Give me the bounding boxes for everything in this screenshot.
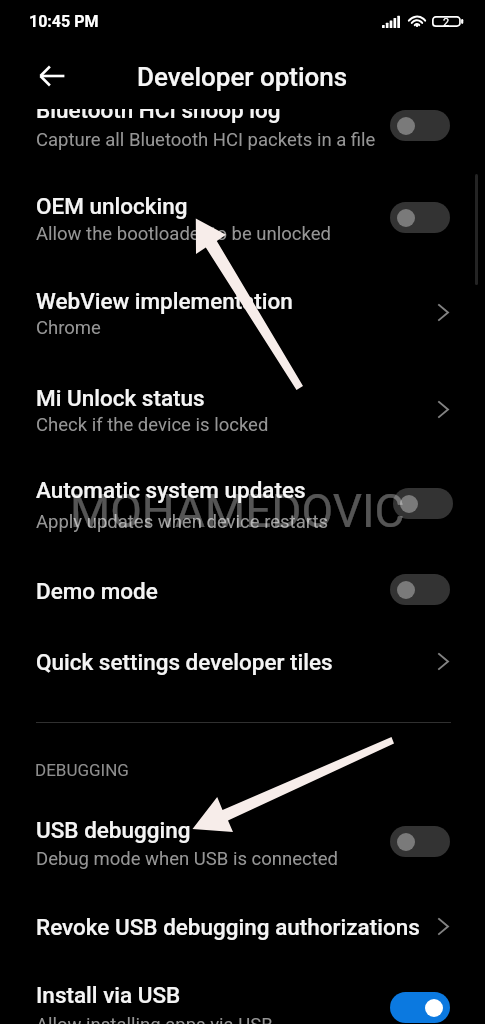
staticText: Chrome (36, 317, 101, 339)
staticText: 10:45 PM (29, 12, 99, 31)
staticText: Quick settings developer tiles (36, 649, 333, 675)
button[interactable]: WebView implementation (0, 252, 485, 347)
staticText: Allow the bootloader to be unlocked (36, 223, 331, 245)
button[interactable]: Demo mode (0, 543, 485, 617)
button[interactable]: WebView implementation (425, 294, 461, 330)
button[interactable]: OEM unlocking, off (390, 202, 450, 233)
staticText: Revoke USB debugging authorizations (36, 914, 420, 940)
button[interactable]: Install via USB, on (390, 992, 450, 1023)
other: Wi-Fi (408, 16, 426, 27)
button[interactable]: OEM unlocking (0, 158, 485, 252)
staticText: OEM unlocking (36, 193, 188, 219)
staticText: Mi Unlock status (36, 385, 205, 411)
button[interactable]: Automatic system updates, off (393, 488, 453, 519)
button[interactable]: Revoke USB debugging authorizations (425, 908, 461, 944)
staticText: WebView implementation (36, 288, 293, 314)
staticText: USB debugging (36, 817, 191, 843)
button[interactable]: Quick settings developer tiles (425, 643, 461, 679)
staticText: Allow installing apps via USB (36, 1014, 273, 1024)
other: Battery 2 percent (432, 16, 464, 27)
button[interactable]: Automatic system updates (0, 443, 485, 543)
staticText: Install via USB (36, 982, 181, 1008)
staticText: Demo mode (36, 578, 158, 604)
staticText: Debug mode when USB is connected (36, 848, 339, 870)
button[interactable]: Bluetooth HCI snoop log (0, 104, 485, 158)
button[interactable]: USB debugging (0, 790, 485, 884)
button[interactable]: Back (28, 54, 76, 98)
staticText: DEBUGGING (35, 760, 129, 780)
button[interactable]: Install via USB (0, 956, 485, 1024)
other: Cellular signal (382, 15, 400, 28)
button[interactable]: Mi Unlock status (0, 347, 485, 443)
staticText: Apply updates when device restarts (36, 511, 329, 533)
staticText: Developer options (137, 62, 348, 92)
button[interactable]: Quick settings developer tiles (0, 617, 485, 692)
button[interactable]: Mi Unlock status (425, 391, 461, 427)
button[interactable]: USB debugging, off (390, 826, 450, 857)
staticText: Capture all Bluetooth HCI packets in a f… (36, 129, 376, 151)
staticText: Check if the device is locked (36, 414, 269, 436)
staticText: MOHAMEDOVIC (70, 484, 405, 538)
staticText: Automatic system updates (36, 477, 306, 503)
staticText: Bluetooth HCI snoop log (36, 109, 281, 123)
button[interactable]: Demo mode, off (390, 574, 450, 605)
button[interactable]: Bluetooth HCI snoop log, off (390, 110, 450, 141)
button[interactable]: Revoke USB debugging authorizations (0, 884, 485, 956)
staticText: 2 (443, 16, 450, 27)
